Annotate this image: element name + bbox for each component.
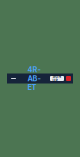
staticText: 4RABET [27, 65, 40, 92]
staticText: SIGN UP [52, 74, 61, 83]
